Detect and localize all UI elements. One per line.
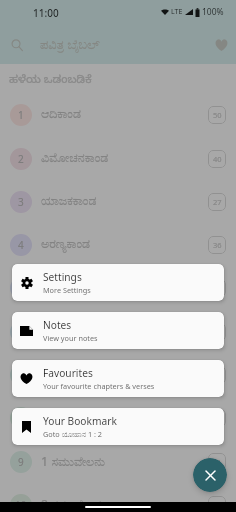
button[interactable]: 1 bbox=[0, 93, 236, 136]
staticText: ಆದಿಕಾಂಡ bbox=[41, 108, 81, 121]
staticText: Favourites bbox=[43, 366, 93, 380]
staticText: 40 bbox=[213, 154, 222, 164]
staticText: 4 bbox=[18, 238, 24, 252]
staticText: 36 bbox=[213, 240, 222, 250]
staticText: 2 bbox=[18, 152, 24, 166]
button[interactable]: 4 bbox=[0, 223, 236, 266]
button[interactable]: 9 bbox=[0, 440, 236, 483]
staticText: 100% bbox=[202, 6, 224, 18]
staticText: 7 bbox=[18, 368, 24, 382]
staticText: ನ್ಯಾಯಸ್ಥಾಪಕರು bbox=[41, 368, 105, 381]
button[interactable]: 7 bbox=[0, 353, 236, 396]
button[interactable]: Favourites bbox=[12, 360, 224, 397]
staticText: 9 bbox=[18, 455, 24, 469]
staticText: 24 bbox=[213, 500, 222, 510]
staticText: 8 bbox=[18, 411, 24, 425]
staticText: ಹಳೆಯ ಒಡಂಬಡಿಕೆ bbox=[9, 71, 92, 89]
staticText: 50 bbox=[213, 110, 222, 120]
staticText: ಅರಣ್ಯಕಾಂಡ bbox=[41, 238, 90, 251]
staticText: ಧರ್ಮೋಪದೇಶಕಾಂಡ bbox=[41, 281, 127, 294]
staticText: Your favourite chapters & verses bbox=[43, 381, 155, 391]
staticText: ಪವಿತ್ರ ಬೈಬಲ್ bbox=[40, 35, 100, 53]
button[interactable]: 2 bbox=[0, 137, 236, 180]
staticText: 3 bbox=[18, 195, 24, 209]
staticText: LTE bbox=[171, 7, 183, 17]
button[interactable]: 10 bbox=[0, 483, 236, 512]
staticText: Your Bookmark bbox=[43, 414, 117, 428]
staticText: 27 bbox=[213, 197, 222, 207]
staticText: ವಿಮೋಚನಕಾಂಡ bbox=[41, 152, 109, 165]
button[interactable]: Notes bbox=[12, 312, 224, 349]
staticText: 2 ಸಮುವೇಲನು bbox=[41, 496, 106, 512]
button[interactable]: Favourites bbox=[207, 31, 235, 59]
staticText: 11:00 bbox=[33, 6, 59, 20]
button[interactable]: 5 bbox=[0, 266, 236, 309]
staticText: 1 bbox=[18, 108, 24, 122]
staticText: ರೂತಳು bbox=[41, 411, 73, 424]
staticText: 31 bbox=[213, 457, 222, 467]
staticText: ಯೆಹೋಶುವ bbox=[41, 325, 95, 338]
staticText: 5 bbox=[18, 281, 24, 295]
staticText: 10 bbox=[15, 498, 27, 512]
staticText: View your notes bbox=[43, 333, 98, 343]
button[interactable]: Search bbox=[5, 33, 29, 57]
button[interactable]: 3 bbox=[0, 180, 236, 223]
button[interactable]: Your Bookmark bbox=[12, 408, 224, 445]
staticText: ಯಾಜಕಕಾಂಡ bbox=[41, 195, 97, 208]
button[interactable]: 6 bbox=[0, 310, 236, 353]
staticText: More Settings bbox=[43, 285, 91, 295]
staticText: 6 bbox=[18, 325, 24, 339]
button[interactable]: Close menu bbox=[193, 458, 227, 492]
button[interactable]: Settings bbox=[12, 264, 224, 301]
staticText: Goto ಯೋಹಾನ 1 : 2 bbox=[43, 429, 102, 439]
staticText: Settings bbox=[43, 270, 82, 284]
staticText: 1 ಸಮುವೇಲನು bbox=[41, 453, 106, 470]
staticText: Notes bbox=[43, 318, 72, 332]
button[interactable]: 8 bbox=[0, 396, 236, 439]
